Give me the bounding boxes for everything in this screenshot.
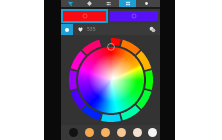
button[interactable]: Brush tool bbox=[61, 0, 80, 7]
button[interactable]: Background colour blue bbox=[110, 11, 158, 21]
button[interactable]: Blend modes bbox=[147, 24, 158, 35]
button[interactable]: Palette colour 4 bbox=[113, 125, 129, 140]
button[interactable]: Layers bbox=[99, 0, 118, 7]
staticText: 535 bbox=[87, 26, 96, 33]
button[interactable]: Palette colour 3 bbox=[97, 125, 113, 140]
button[interactable]: Colour mode bbox=[61, 24, 73, 35]
button[interactable]: Foreground colour red bbox=[63, 11, 106, 21]
button[interactable]: Palette colour 1 bbox=[65, 125, 81, 140]
button[interactable]: Palette colour 5 bbox=[129, 125, 145, 140]
button[interactable]: Palette colour 6 bbox=[145, 125, 160, 140]
button[interactable]: Eraser tool bbox=[80, 0, 99, 7]
button[interactable]: Favourite bbox=[76, 25, 85, 34]
button[interactable]: Colour palette bbox=[118, 0, 137, 7]
button[interactable]: Palette colour 2 bbox=[81, 125, 97, 140]
button[interactable]: More options bbox=[137, 0, 156, 7]
